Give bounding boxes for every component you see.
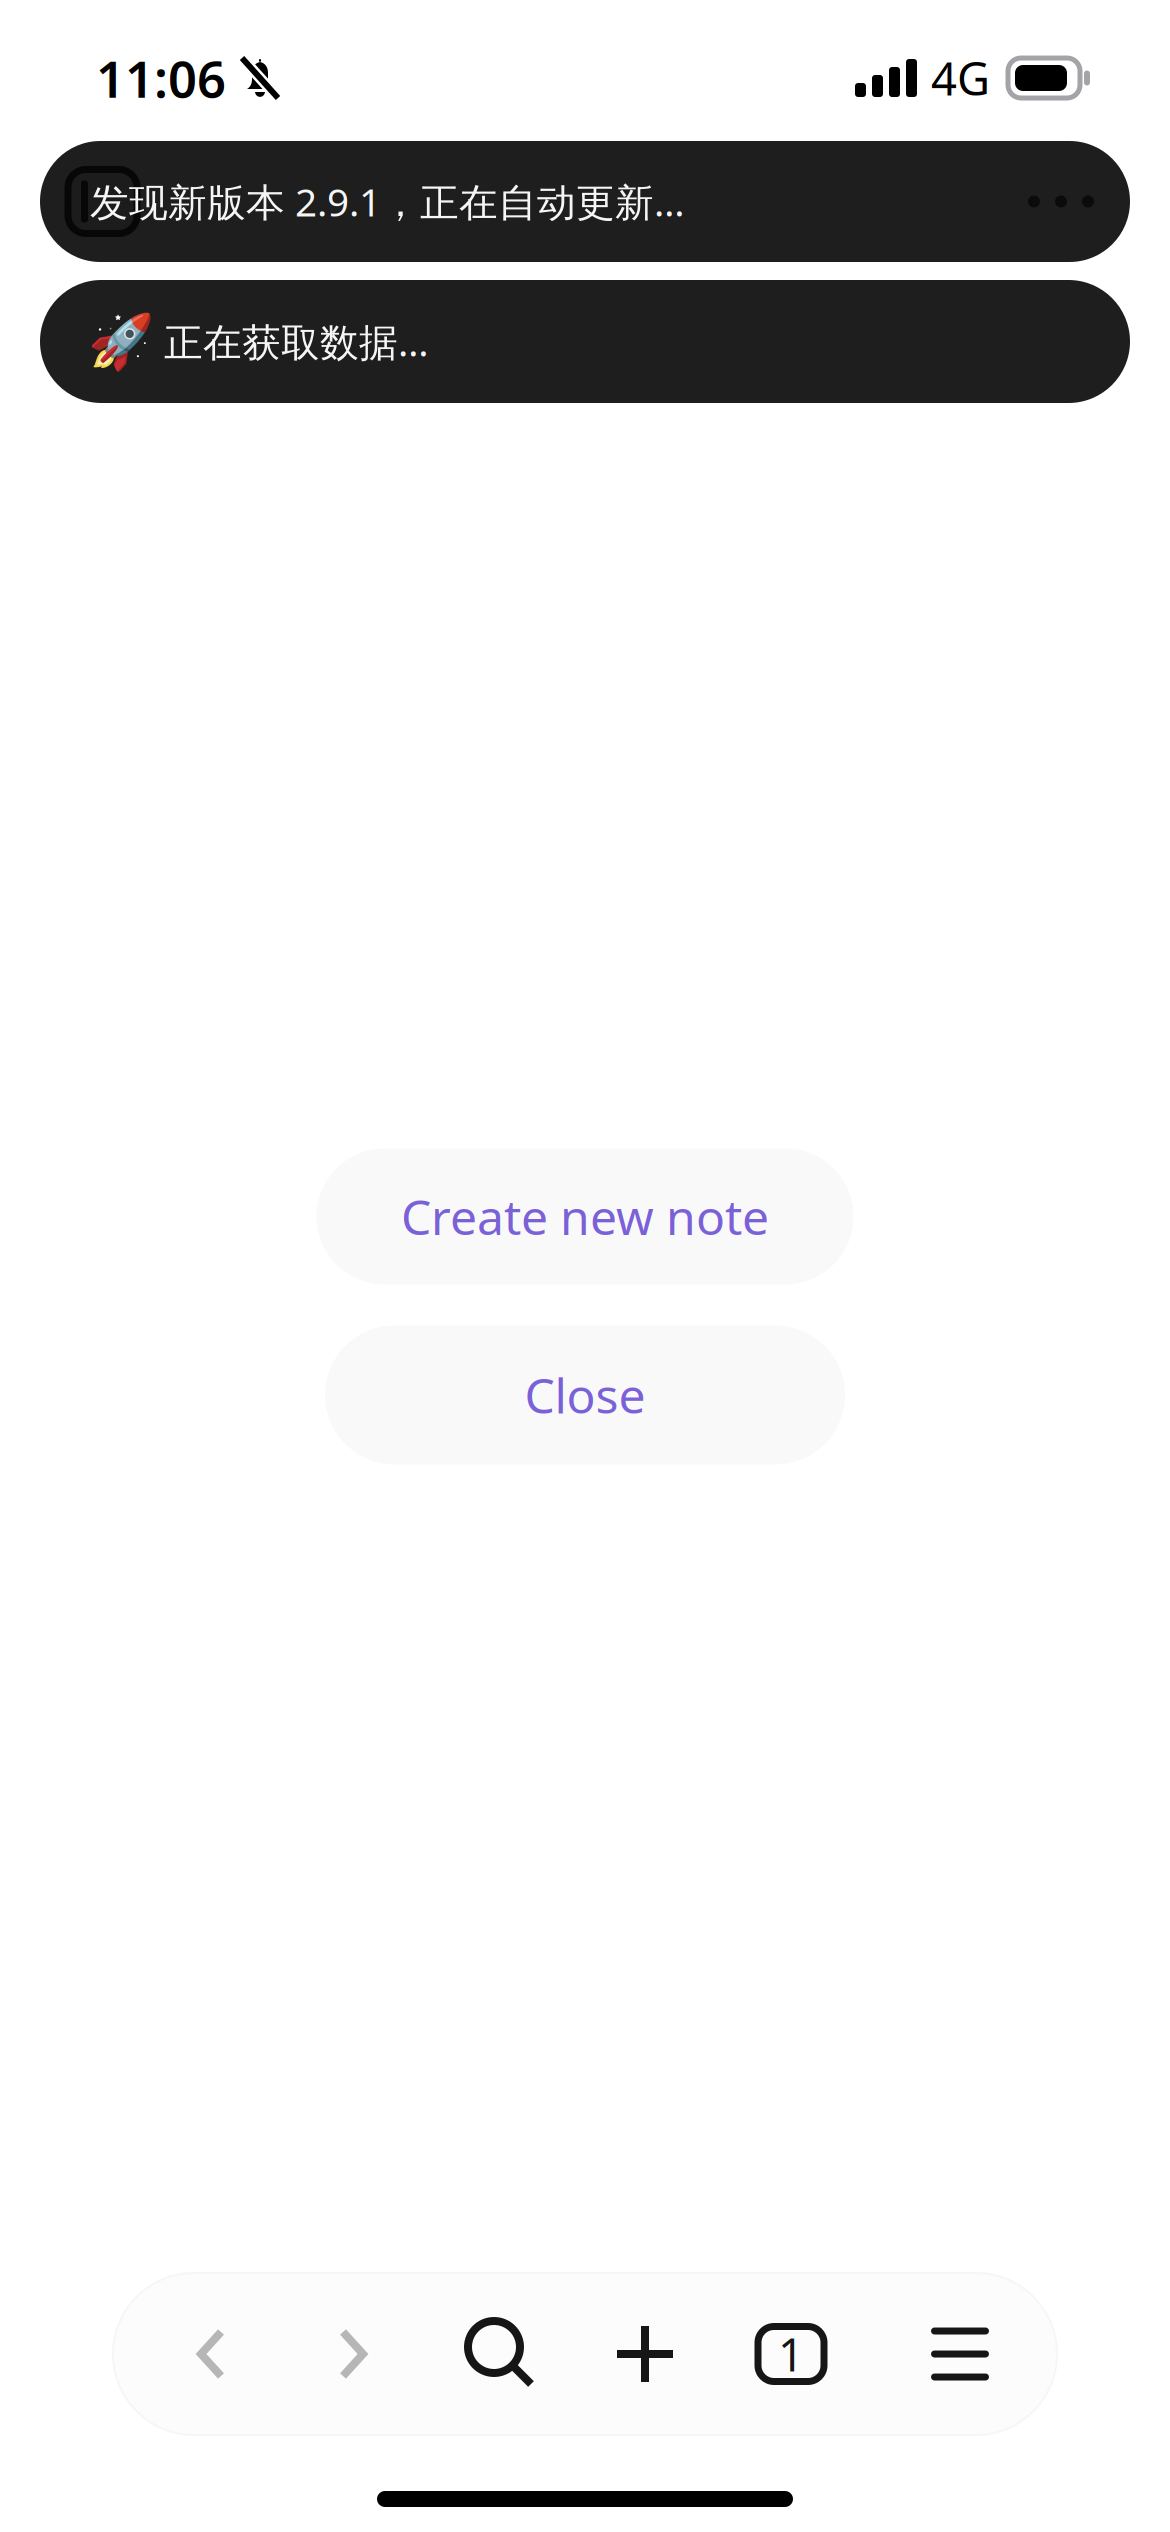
- staticText: Close: [524, 1363, 645, 1427]
- staticText: 4G: [931, 48, 990, 108]
- button[interactable]: 🚀: [40, 280, 1130, 403]
- staticText: 正在获取数据…: [164, 316, 429, 367]
- button[interactable]: Close: [325, 1325, 845, 1464]
- button[interactable]: Forward: [308, 2274, 398, 2434]
- button[interactable]: New Tab: [604, 2274, 686, 2434]
- button[interactable]: Create new note: [316, 1148, 853, 1284]
- button[interactable]: Menu: [896, 2274, 1024, 2434]
- staticText: 🚀: [88, 311, 154, 372]
- staticText: 发现新版本 2.9.1，正在自动更新…: [90, 176, 685, 227]
- button[interactable]: Back: [114, 2274, 308, 2434]
- staticText: 1: [778, 2324, 804, 2384]
- staticText: 11:06: [96, 44, 226, 112]
- button[interactable]: Search: [398, 2274, 604, 2434]
- staticText: Create new note: [401, 1185, 769, 1248]
- button[interactable]: Tabs: [686, 2274, 896, 2434]
- button[interactable]: 发现新版本 2.9.1，正在自动更新…: [40, 141, 1130, 262]
